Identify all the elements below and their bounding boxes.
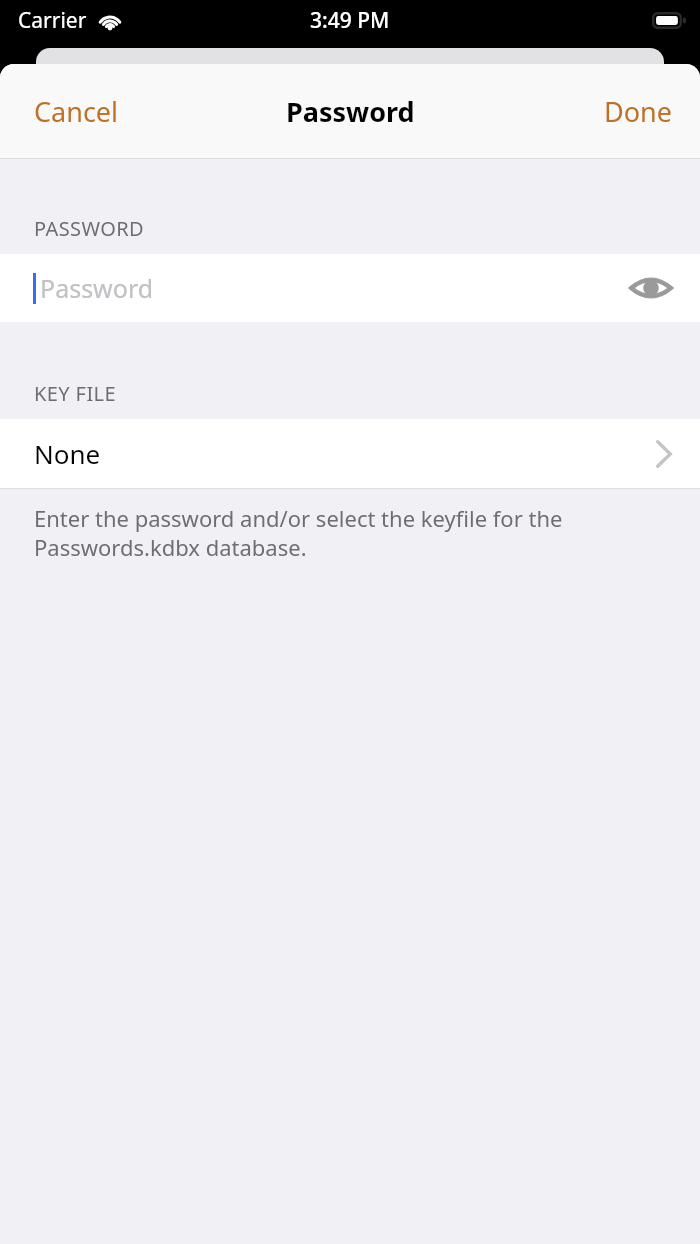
button[interactable]: Cancel [0, 79, 153, 144]
staticText: Enter the password and/or select the key… [34, 503, 590, 562]
staticText: KEY FILE [34, 380, 116, 407]
staticText: Password [40, 271, 154, 305]
button[interactable]: None [0, 419, 700, 488]
staticText: Password [286, 93, 415, 130]
staticText: 3:49 PM [310, 6, 390, 35]
staticText: Cancel [34, 93, 119, 130]
staticText: Carrier [18, 6, 87, 35]
staticText: None [34, 436, 101, 471]
staticText: Done [604, 93, 672, 130]
button[interactable]: Password [0, 254, 700, 322]
button[interactable]: Show password [628, 265, 674, 311]
button[interactable]: Done [576, 79, 700, 144]
staticText: PASSWORD [34, 215, 145, 242]
